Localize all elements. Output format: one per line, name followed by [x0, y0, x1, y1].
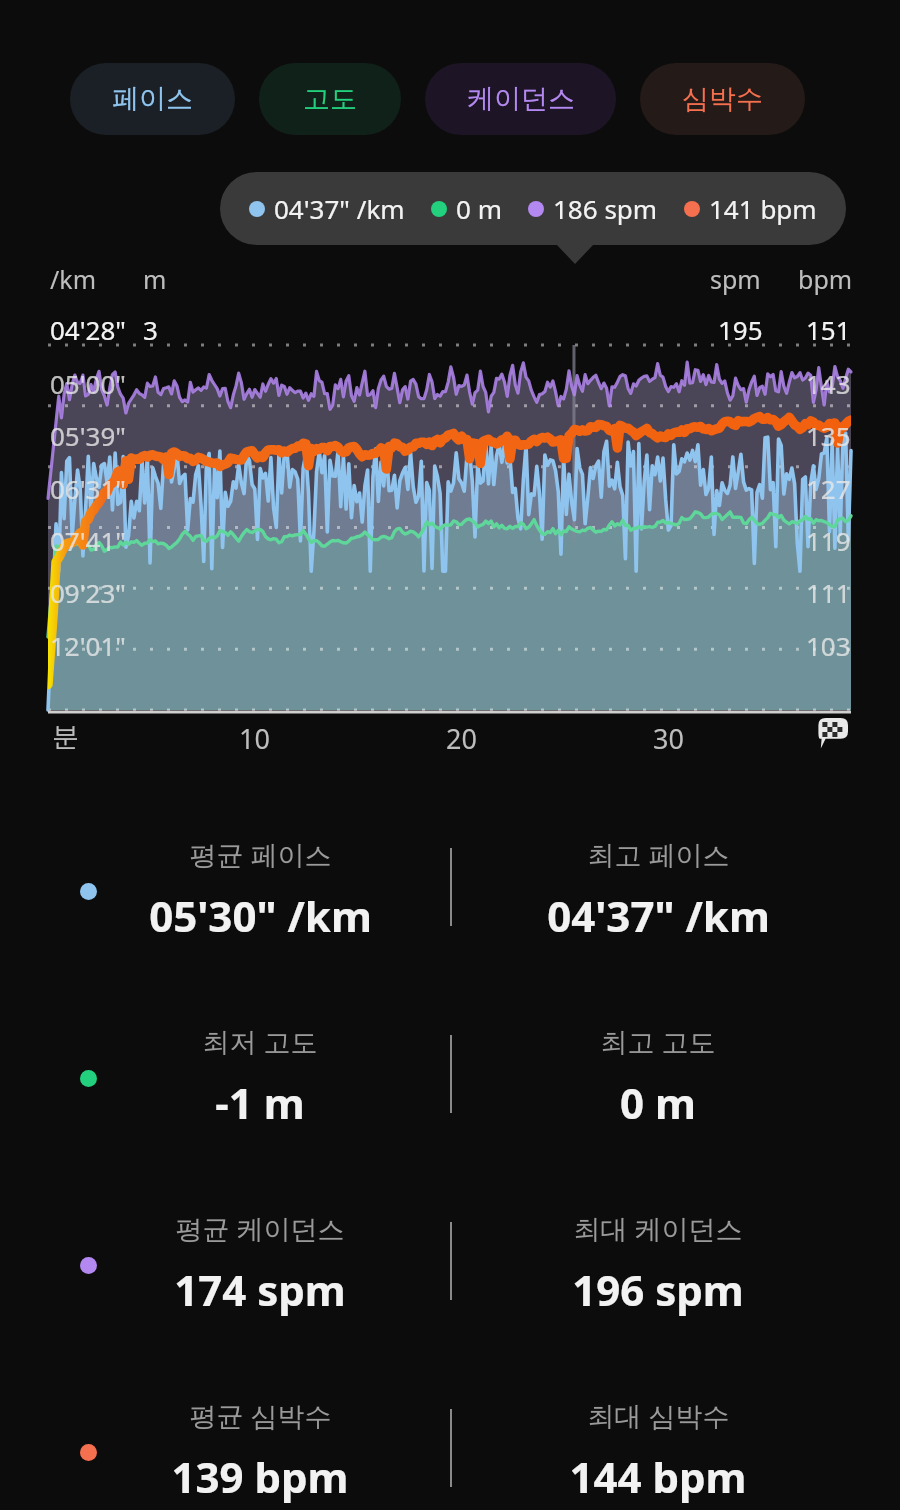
- staticText: 127: [806, 471, 851, 506]
- staticText: 141 bpm: [709, 191, 817, 226]
- button[interactable]: 고도: [259, 63, 401, 135]
- staticText: 05'39": [50, 418, 126, 453]
- staticText: 심박수: [682, 82, 763, 116]
- staticText: 최고 페이스: [587, 836, 730, 873]
- staticText: 최저 고도: [202, 1023, 318, 1060]
- staticText: 06'31": [50, 471, 126, 506]
- staticText: 최대 심박수: [587, 1397, 730, 1434]
- staticText: 04'37" /km: [547, 887, 770, 944]
- staticText: 05'30" /km: [149, 887, 372, 944]
- button[interactable]: [48, 345, 851, 710]
- staticText: 20: [446, 720, 477, 757]
- button[interactable]: 평균 케이던스: [0, 1164, 900, 1351]
- staticText: 평균 케이던스: [175, 1210, 345, 1247]
- staticText: -1 m: [215, 1074, 305, 1131]
- staticText: 143: [806, 366, 851, 401]
- staticText: 평균 심박수: [189, 1397, 332, 1434]
- staticText: spm: [710, 262, 761, 296]
- button[interactable]: 04'37" /km: [220, 172, 846, 245]
- staticText: 196 spm: [572, 1261, 744, 1318]
- staticText: 05'00": [50, 366, 126, 401]
- button[interactable]: 심박수: [640, 63, 805, 135]
- staticText: 3: [143, 312, 158, 347]
- staticText: 151: [806, 312, 851, 347]
- staticText: 고도: [303, 82, 357, 116]
- staticText: 04'28": [50, 312, 126, 347]
- staticText: 119: [806, 523, 851, 558]
- button[interactable]: Finish: [812, 714, 852, 754]
- staticText: 139 bpm: [171, 1448, 349, 1505]
- button[interactable]: 최저 고도: [0, 977, 900, 1164]
- button[interactable]: 페이스: [70, 63, 235, 135]
- staticText: 케이던스: [467, 82, 575, 116]
- staticText: 144 bpm: [569, 1448, 747, 1505]
- staticText: 평균 페이스: [189, 836, 332, 873]
- staticText: 페이스: [112, 82, 193, 116]
- staticText: 0 m: [456, 191, 502, 226]
- staticText: 04'37" /km: [274, 191, 405, 226]
- button[interactable]: 평균 페이스: [0, 790, 900, 977]
- staticText: 분: [52, 720, 79, 754]
- staticText: 30: [653, 720, 684, 757]
- staticText: 0 m: [620, 1074, 696, 1131]
- staticText: 135: [806, 418, 851, 453]
- staticText: bpm: [798, 262, 853, 296]
- staticText: 07'41": [50, 523, 126, 558]
- staticText: 103: [806, 628, 851, 663]
- button[interactable]: 케이던스: [425, 63, 616, 135]
- staticText: 174 spm: [174, 1261, 346, 1318]
- staticText: m: [143, 262, 167, 296]
- staticText: 최대 케이던스: [573, 1210, 743, 1247]
- staticText: 09'23": [50, 575, 126, 610]
- staticText: 111: [806, 575, 851, 610]
- staticText: 최고 고도: [600, 1023, 716, 1060]
- staticText: 186 spm: [553, 191, 658, 226]
- staticText: /km: [50, 262, 97, 296]
- staticText: 195: [718, 312, 763, 347]
- staticText: 10: [239, 720, 270, 757]
- staticText: 12'01": [50, 628, 126, 663]
- button[interactable]: 평균 심박수: [0, 1351, 900, 1510]
